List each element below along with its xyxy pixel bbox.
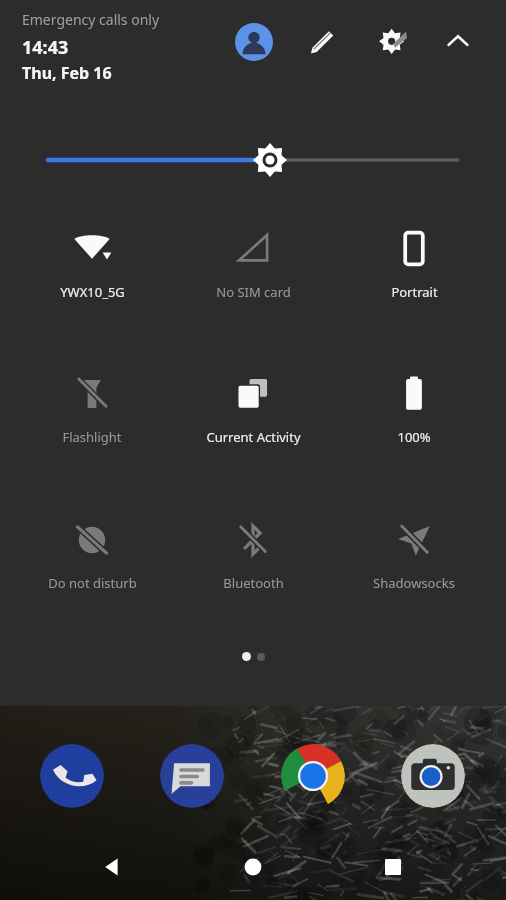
button[interactable]: Messages: [160, 744, 224, 808]
button[interactable]: Camera: [401, 744, 465, 808]
button[interactable]: Recent apps: [373, 847, 413, 887]
button[interactable]: Brightness: [0, 140, 506, 180]
button[interactable]: User account: [235, 23, 273, 61]
staticText: Portrait: [391, 283, 438, 301]
button[interactable]: Settings: [374, 22, 416, 64]
button[interactable]: Shadowsocks: [342, 508, 486, 608]
staticText: Current Activity: [206, 428, 301, 446]
staticText: Thu, Feb 16: [22, 62, 112, 84]
button[interactable]: Bluetooth: [181, 508, 325, 608]
button[interactable]: Portrait: [342, 217, 486, 317]
button[interactable]: Collapse: [440, 24, 476, 60]
staticText: Flashlight: [62, 428, 122, 446]
staticText: Emergency calls only: [22, 10, 160, 29]
button[interactable]: Chrome: [281, 744, 345, 808]
button[interactable]: Current Activity: [181, 362, 325, 462]
staticText: Shadowsocks: [373, 574, 455, 592]
button[interactable]: No SIM card: [181, 217, 325, 317]
button[interactable]: Edit: [303, 24, 339, 60]
staticText: 100%: [397, 428, 431, 446]
staticText: Do not disturb: [48, 574, 137, 592]
staticText: YWX10_5G: [60, 283, 125, 301]
staticText: No SIM card: [216, 283, 291, 301]
button[interactable]: YWX10_5G: [20, 217, 164, 317]
staticText: 14:43: [22, 35, 69, 60]
button[interactable]: Home: [233, 847, 273, 887]
button[interactable]: Back: [92, 847, 132, 887]
button[interactable]: 100%: [342, 362, 486, 462]
button[interactable]: Do not disturb: [20, 508, 164, 608]
button[interactable]: Phone: [40, 744, 104, 808]
button[interactable]: Flashlight: [20, 362, 164, 462]
staticText: Bluetooth: [223, 574, 284, 592]
